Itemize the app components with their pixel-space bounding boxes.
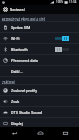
staticText: 11:54 (69, 0, 77, 4)
button[interactable]: Přenesená data (0, 55, 79, 66)
staticText: Přenesená data (11, 58, 69, 63)
button[interactable]: Toggle Bluetooth (55, 47, 69, 52)
staticText: ZAŘÍZENÍ (2, 81, 15, 85)
staticText: DTS Studio Sound (11, 110, 69, 115)
button[interactable]: Home (28, 127, 52, 140)
staticText: Nastavení (10, 8, 25, 12)
button[interactable]: Zvuk (0, 96, 79, 107)
button[interactable]: DTS Studio Sound (0, 107, 79, 118)
button[interactable]: Bluetooth (0, 44, 79, 55)
button[interactable]: Další... (0, 66, 79, 77)
staticText: Zvuk (11, 99, 69, 104)
button[interactable]: Recent apps (53, 127, 77, 140)
staticText: Zvukové profily (11, 88, 69, 93)
staticText: Správa SIM (11, 25, 69, 30)
staticText: Displej (11, 121, 69, 126)
button[interactable]: Zvukové profily (0, 85, 79, 96)
staticText: BEZDRÁTOVÁ PŘIPOJENÍ A SÍTĚ (2, 18, 45, 22)
button[interactable]: Displej (0, 118, 79, 129)
staticText: Bluetooth (11, 47, 55, 52)
staticText: Wi-Fi (11, 36, 55, 41)
button[interactable]: Wi-Fi (0, 33, 79, 44)
staticText: Další... (11, 69, 69, 74)
button[interactable]: Správa SIM (0, 22, 79, 33)
staticText: 100% (56, 0, 64, 4)
button[interactable]: Toggle Wi-Fi (55, 36, 69, 41)
button[interactable]: Nastavení (0, 5, 79, 14)
button[interactable]: Back (2, 127, 26, 140)
